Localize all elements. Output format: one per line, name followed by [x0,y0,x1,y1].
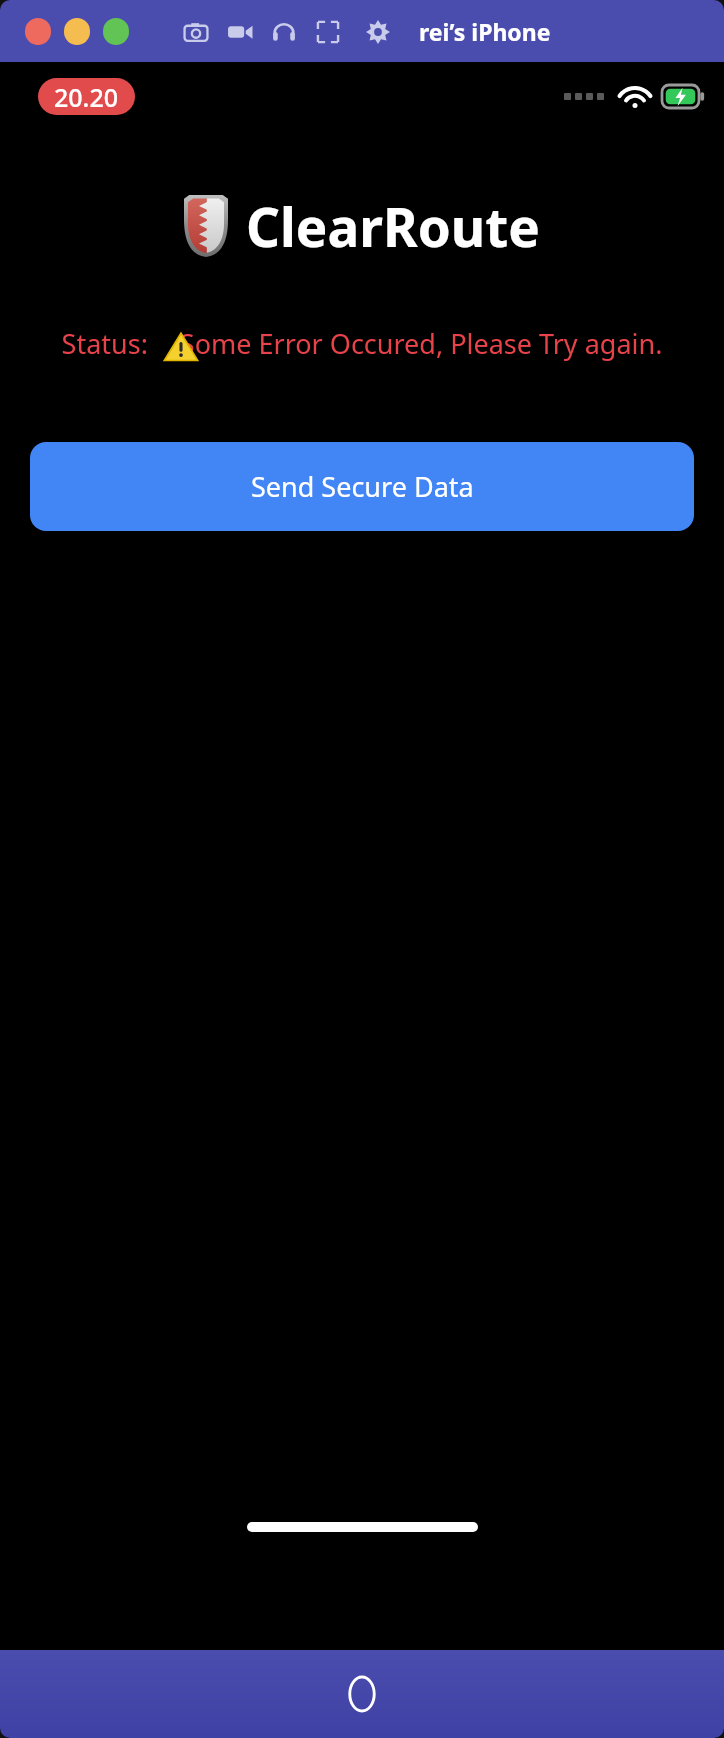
staticText: ClearRoute [246,190,540,262]
button[interactable] [25,18,51,45]
staticText: 20.20 [54,80,119,114]
button[interactable]: Camera [181,17,211,47]
staticText: Send Secure Data [251,468,474,505]
button[interactable] [103,18,129,45]
button[interactable]: Full screen [313,17,343,47]
staticText: rei’s iPhone [419,16,551,47]
button[interactable]: Send Secure Data [30,442,694,531]
button[interactable] [64,18,90,45]
button[interactable]: Record video [225,17,255,47]
staticText: Status: Some Error Occured, Please Try a… [30,325,694,362]
button[interactable]: Home [345,1677,379,1711]
button[interactable]: Audio [269,17,299,47]
button[interactable]: Settings [363,17,393,47]
